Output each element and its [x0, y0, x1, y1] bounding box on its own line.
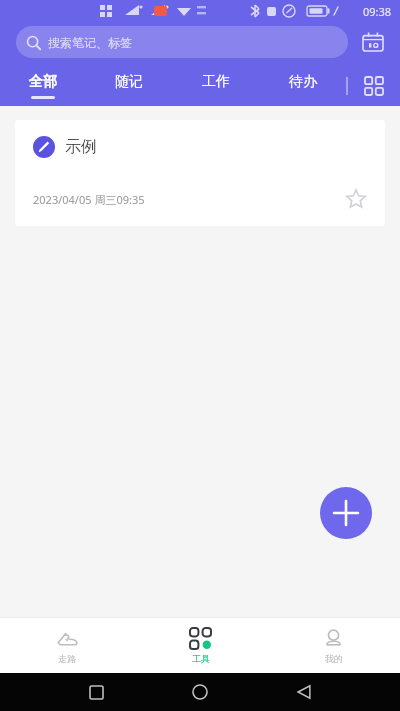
staticText: 09:38 [363, 4, 392, 19]
button[interactable]: 示例 [15, 120, 385, 226]
button[interactable]: Favorite [343, 186, 369, 212]
button[interactable]: Grid view [348, 66, 400, 106]
button[interactable]: 待办 [259, 66, 346, 106]
button[interactable]: Recents [81, 677, 111, 707]
staticText: 示例 [65, 137, 97, 157]
button[interactable]: Back [289, 677, 319, 707]
staticText: 走路 [58, 653, 76, 664]
staticText: 工具 [192, 653, 210, 664]
button[interactable]: 走路 [0, 618, 134, 673]
button[interactable]: 我的 [267, 618, 400, 673]
button[interactable]: 工具 [134, 618, 267, 673]
button[interactable]: 全部 [0, 66, 86, 106]
button[interactable]: 搜索笔记、标签 [16, 26, 348, 58]
button[interactable]: 随记 [86, 66, 172, 106]
staticText: 搜索笔记、标签 [48, 35, 132, 50]
staticText: 全部 [29, 73, 57, 91]
staticText: 随记 [115, 73, 143, 91]
staticText: 工作 [202, 73, 230, 91]
staticText: 待办 [289, 73, 317, 91]
button[interactable]: Add note [320, 487, 372, 539]
staticText: 2023/04/05 周三09:35 [33, 192, 343, 207]
button[interactable]: Calendar [358, 27, 388, 57]
button[interactable]: Home [185, 677, 215, 707]
button[interactable]: 工作 [172, 66, 259, 106]
staticText: 我的 [325, 653, 343, 664]
